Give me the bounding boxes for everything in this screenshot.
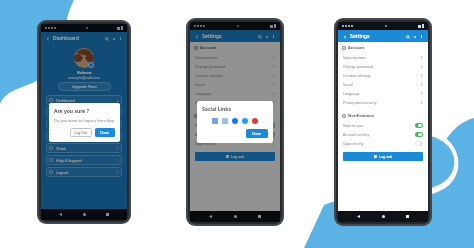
staticText: Payments <box>56 110 73 115</box>
staticText: Account activity <box>195 132 222 137</box>
button[interactable]: Notifications <box>263 33 270 40</box>
button[interactable]: Ticket <box>49 143 119 153</box>
button[interactable]: Change password <box>195 62 275 71</box>
staticText: Account <box>200 45 217 50</box>
button[interactable]: Back <box>206 212 215 221</box>
staticText: Account <box>348 45 365 50</box>
button[interactable]: Content settings <box>343 71 423 80</box>
button[interactable]: Log Out <box>74 128 88 137</box>
button[interactable]: Privacy and security <box>343 98 423 107</box>
button[interactable]: Change password <box>343 62 423 71</box>
button[interactable]: New for you <box>195 121 275 130</box>
staticText: Rebeca <box>77 70 92 75</box>
button[interactable]: Recents <box>255 212 264 221</box>
button[interactable]: Language <box>343 89 423 98</box>
staticText: Dashboard <box>53 35 80 42</box>
button[interactable]: Notifications <box>411 33 418 40</box>
button[interactable]: Close <box>252 129 262 138</box>
staticText: New for you <box>195 123 216 128</box>
button[interactable]: Log out <box>195 152 275 161</box>
button[interactable]: Plans <box>49 119 119 129</box>
staticText: Social <box>195 82 205 87</box>
staticText: Log Out <box>74 130 88 135</box>
button[interactable]: Search <box>256 33 263 40</box>
button[interactable]: Log out <box>343 152 423 161</box>
staticText: Social <box>343 82 353 87</box>
staticText: Close <box>100 130 110 135</box>
button[interactable]: Social link 2 <box>232 118 238 124</box>
button[interactable]: Account activity <box>343 130 423 139</box>
button[interactable]: Subscriptions <box>195 53 275 62</box>
button[interactable]: Notifications <box>110 35 117 42</box>
staticText: Are you sure ? <box>54 108 89 115</box>
staticText: Close <box>252 131 262 136</box>
staticText: Social Links <box>202 106 231 113</box>
staticText: Log out <box>379 154 392 159</box>
staticText: Settings <box>202 33 222 40</box>
staticText: Privacy and security <box>195 100 229 105</box>
button[interactable]: Back <box>193 33 200 40</box>
staticText: Language <box>195 91 212 96</box>
button[interactable]: More options <box>270 33 277 40</box>
button[interactable]: Back <box>354 212 363 221</box>
staticText: Ticket <box>56 146 66 151</box>
staticText: Change password <box>195 64 226 69</box>
button[interactable]: Opportunity <box>195 139 275 148</box>
button[interactable]: Close <box>100 128 110 137</box>
staticText: Do you want to logout from App <box>54 118 115 123</box>
button[interactable]: Back <box>56 210 65 219</box>
button[interactable]: Opportunity <box>343 139 423 148</box>
button[interactable]: Social <box>195 80 275 89</box>
button[interactable]: Dashboard <box>49 95 119 105</box>
button[interactable]: Payments <box>49 107 119 117</box>
button[interactable]: Search <box>103 35 110 42</box>
staticText: Upgrade Plans <box>72 84 97 89</box>
button[interactable]: Social link 3 <box>242 118 248 124</box>
button[interactable]: Recents <box>103 210 112 219</box>
button[interactable]: Recents <box>403 212 412 221</box>
staticText: Settings <box>350 33 370 40</box>
button[interactable]: Search <box>404 33 411 40</box>
staticText: Change password <box>343 64 374 69</box>
button[interactable]: New for you <box>343 121 423 130</box>
staticText: Logout <box>56 170 68 175</box>
button[interactable]: More options <box>418 33 425 40</box>
staticText: Account activity <box>343 132 370 137</box>
staticText: Help & Support <box>56 158 82 163</box>
button[interactable]: Account activity <box>195 130 275 139</box>
button[interactable]: Home <box>231 212 240 221</box>
staticText: Language <box>343 91 360 96</box>
button[interactable]: Social link 4 <box>252 118 258 124</box>
staticText: example@mail.com <box>68 75 101 80</box>
staticText: Opportunity <box>195 141 216 146</box>
button[interactable]: Subscriptions <box>343 53 423 62</box>
staticText: Plans <box>56 122 66 127</box>
button[interactable]: Social link 1 <box>222 118 228 124</box>
button[interactable]: Social link 0 <box>212 118 218 124</box>
button[interactable]: Home <box>379 212 388 221</box>
staticText: Subscriptions <box>343 55 366 60</box>
button[interactable]: Social <box>343 80 423 89</box>
button[interactable]: Help & Support <box>49 155 119 165</box>
staticText: Subscriptions <box>195 55 218 60</box>
button[interactable]: Logout <box>49 167 119 177</box>
staticText: Notifications <box>348 113 374 118</box>
button[interactable]: Upgrade Plans <box>58 82 111 91</box>
button[interactable]: More options <box>117 35 124 42</box>
button[interactable]: Back <box>44 35 51 42</box>
button[interactable]: Back <box>341 33 348 40</box>
staticText: New for you <box>343 123 364 128</box>
button[interactable]: Privacy and security <box>195 98 275 107</box>
staticText: Privacy and security <box>343 100 377 105</box>
staticText: Dashboard <box>56 98 75 103</box>
button[interactable]: Content settings <box>195 71 275 80</box>
button[interactable]: Home <box>80 210 89 219</box>
staticText: Content settings <box>195 73 223 78</box>
button[interactable]: Language <box>195 89 275 98</box>
staticText: Opportunity <box>343 141 364 146</box>
staticText: Content settings <box>343 73 371 78</box>
staticText: Log out <box>231 154 244 159</box>
button[interactable]: Settings <box>49 131 119 141</box>
